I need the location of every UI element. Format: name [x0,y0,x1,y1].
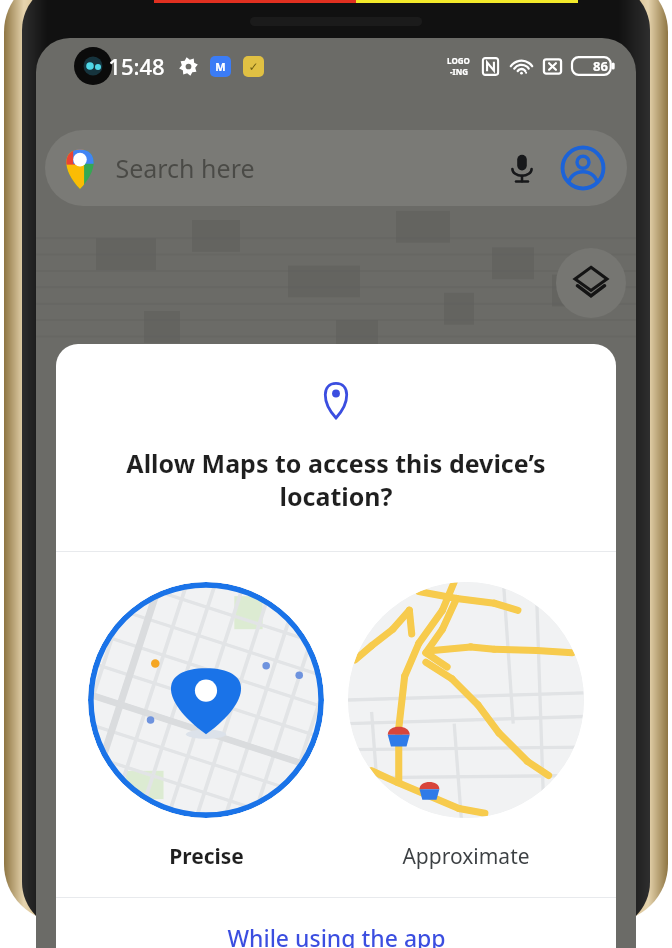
staticText: LOGO [447,55,470,66]
staticText: Search here [115,151,255,185]
staticText: -ING [450,66,468,77]
button[interactable]: Account [557,142,609,194]
staticText: While using the app [227,922,446,948]
button[interactable]: While using the app [56,922,616,948]
staticText: ✓ [248,60,259,74]
staticText: Allow Maps to access this device’s locat… [84,446,588,513]
staticText: Precise [169,842,244,871]
button[interactable]: Search here [45,130,627,206]
button[interactable]: Map layers [556,248,626,318]
staticText: 86 [593,57,608,75]
button[interactable]: Precise [76,582,336,871]
button[interactable]: Approximate [336,582,596,871]
button[interactable]: Voice search [499,145,545,191]
staticText: M [215,59,226,74]
staticText: Approximate [402,842,530,871]
staticText: 15:48 [108,51,165,81]
